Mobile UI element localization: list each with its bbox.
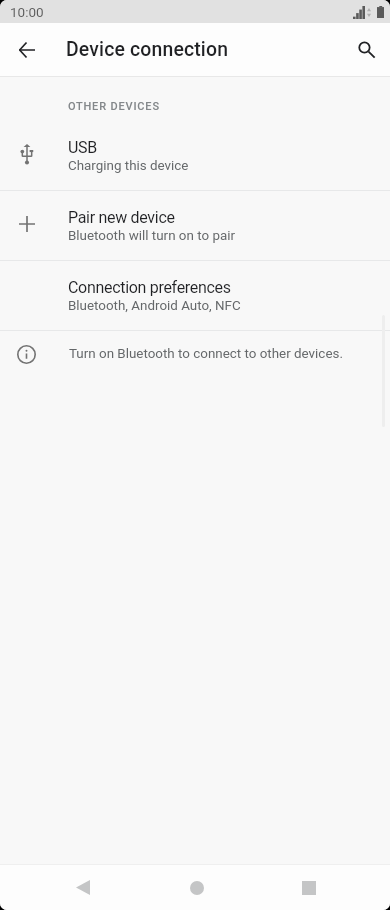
button[interactable]: Search [346, 29, 386, 69]
staticText: Charging this device [68, 158, 189, 174]
staticText: Pair new device [68, 208, 175, 227]
staticText: USB [68, 138, 97, 157]
staticText: Bluetooth, Android Auto, NFC [68, 298, 241, 314]
button[interactable]: Connection preferences [0, 261, 390, 330]
staticText: OTHER DEVICES [68, 100, 160, 113]
staticText: Device connection [66, 38, 229, 61]
staticText: Turn on Bluetooth to connect to other de… [69, 346, 343, 362]
staticText: Bluetooth will turn on to pair [68, 228, 236, 244]
staticText: Connection preferences [68, 278, 231, 297]
staticText: 10:00 [10, 4, 44, 20]
button[interactable]: Recent apps [279, 865, 338, 910]
button[interactable]: Back [53, 865, 112, 910]
button[interactable]: Navigate up [7, 30, 47, 70]
button[interactable]: USB [0, 121, 390, 190]
button[interactable]: Pair new device [0, 191, 390, 260]
button[interactable]: Home [167, 865, 226, 910]
